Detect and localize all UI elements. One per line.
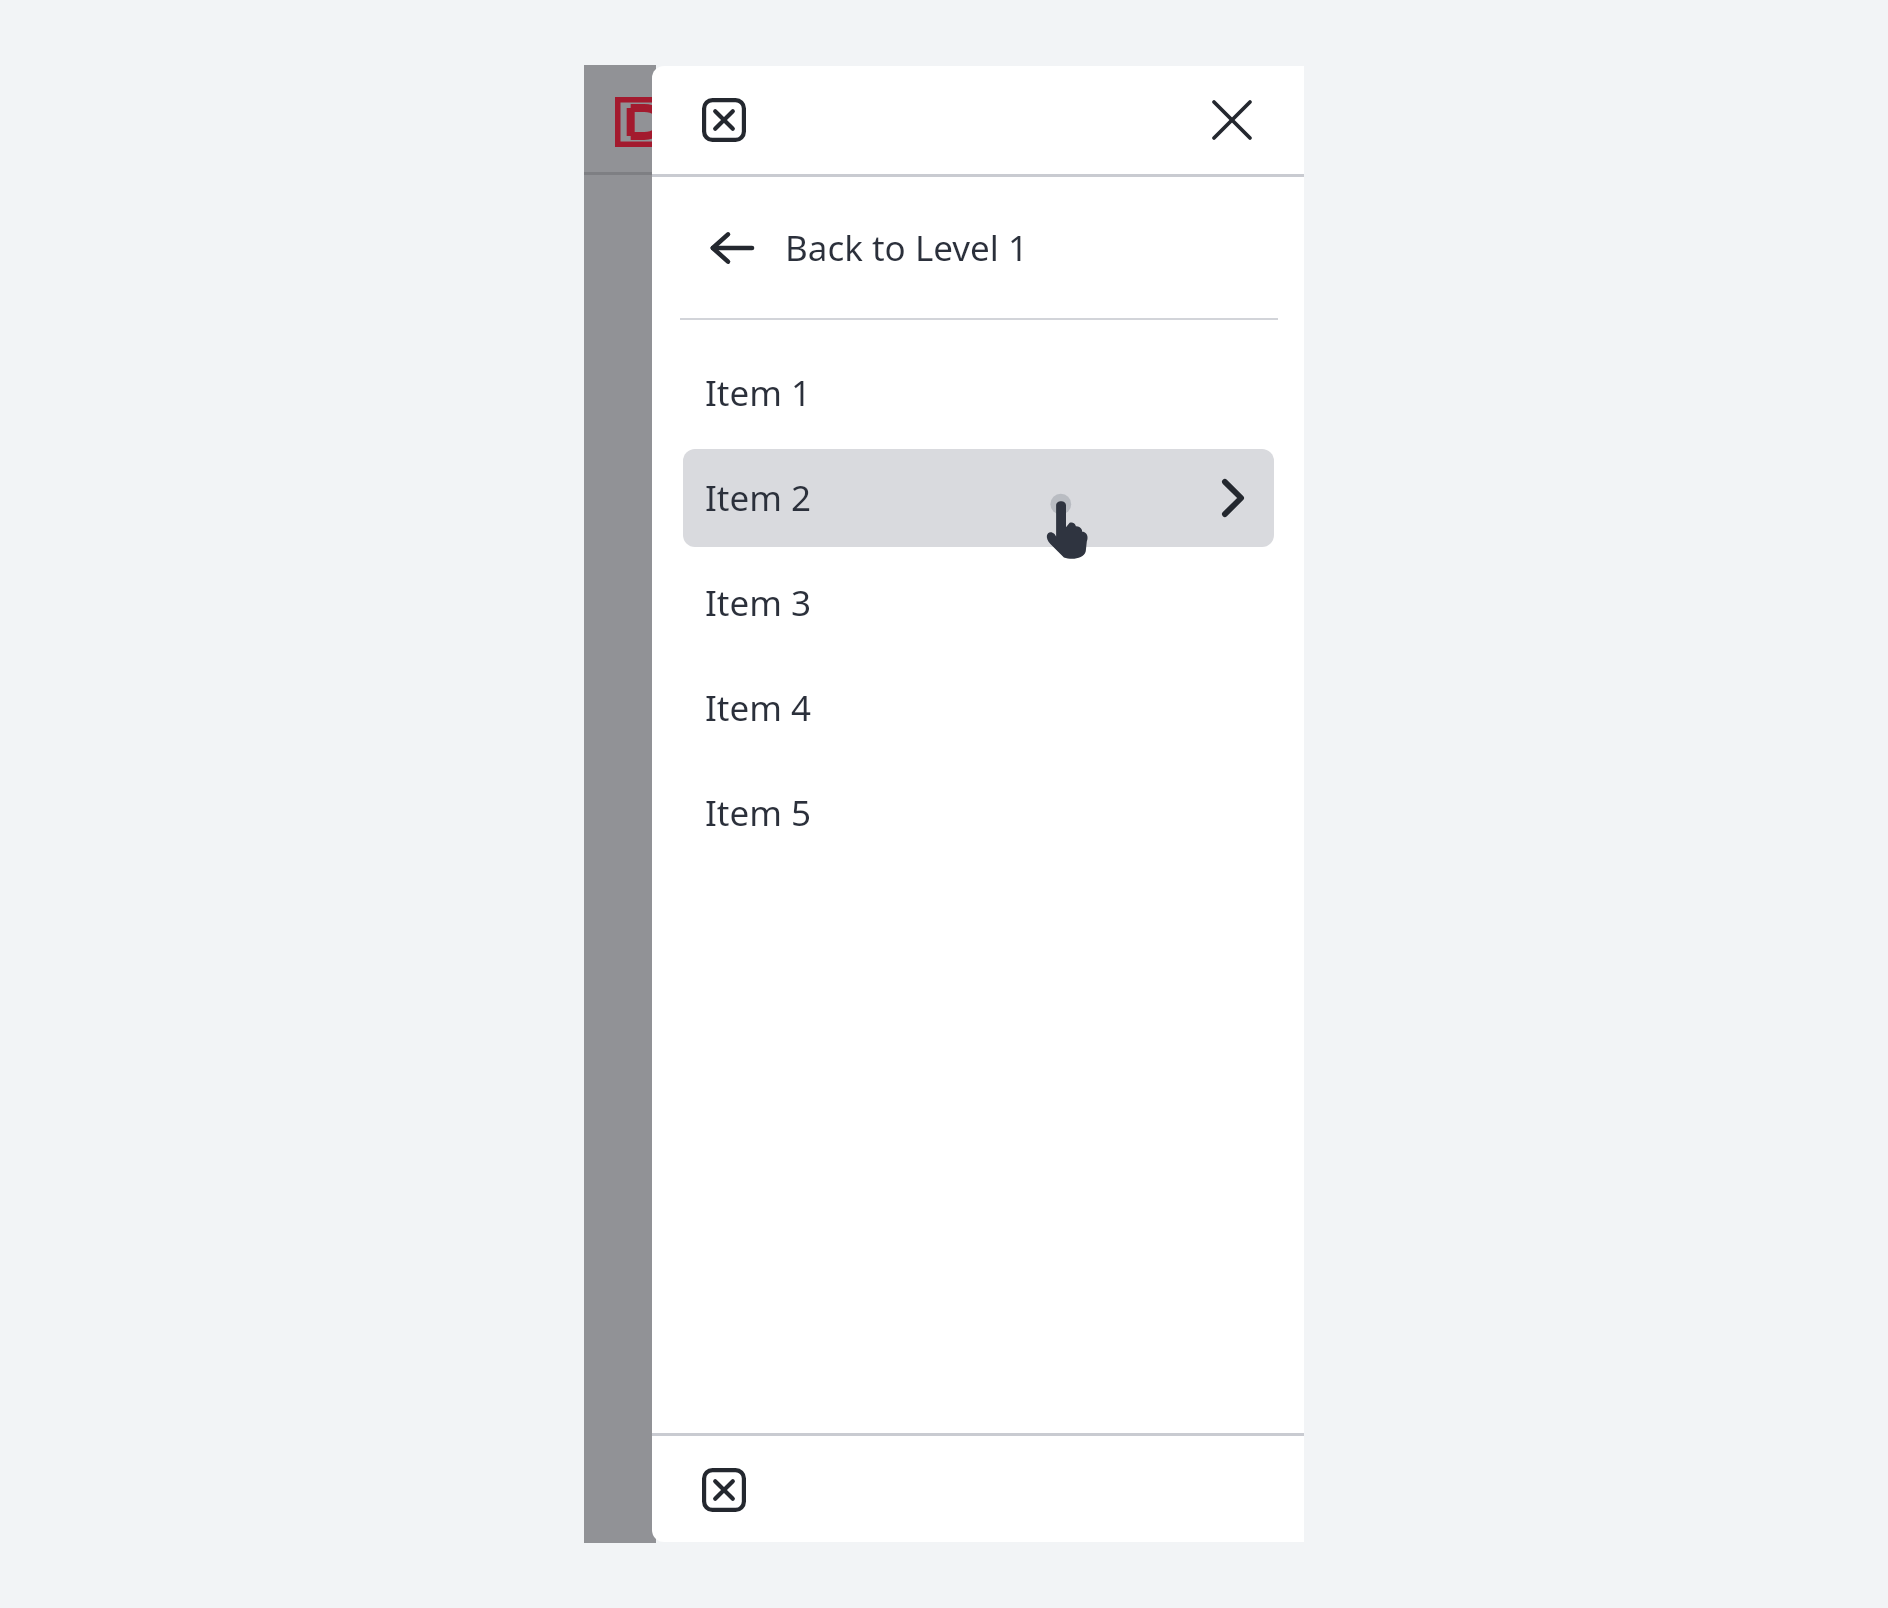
staticText: Item 4	[705, 684, 812, 732]
button[interactable]: Close panel	[700, 96, 748, 144]
button[interactable]: Item 1	[683, 344, 1274, 442]
staticText: Item 5	[705, 789, 812, 837]
staticText: Item 3	[705, 579, 812, 627]
button[interactable]: Item 5	[683, 764, 1274, 862]
button[interactable]: Close	[1204, 92, 1260, 148]
button[interactable]: Item 2	[683, 449, 1274, 547]
button[interactable]: Item 4	[683, 659, 1274, 757]
staticText: Item 2	[705, 474, 812, 522]
staticText: Back to Level 1	[785, 224, 1028, 272]
button[interactable]: Item 3	[683, 554, 1274, 652]
staticText: Item 1	[705, 369, 812, 417]
button[interactable]: Back to Level 1	[652, 177, 1304, 318]
button[interactable]: Close menu	[700, 1466, 748, 1514]
